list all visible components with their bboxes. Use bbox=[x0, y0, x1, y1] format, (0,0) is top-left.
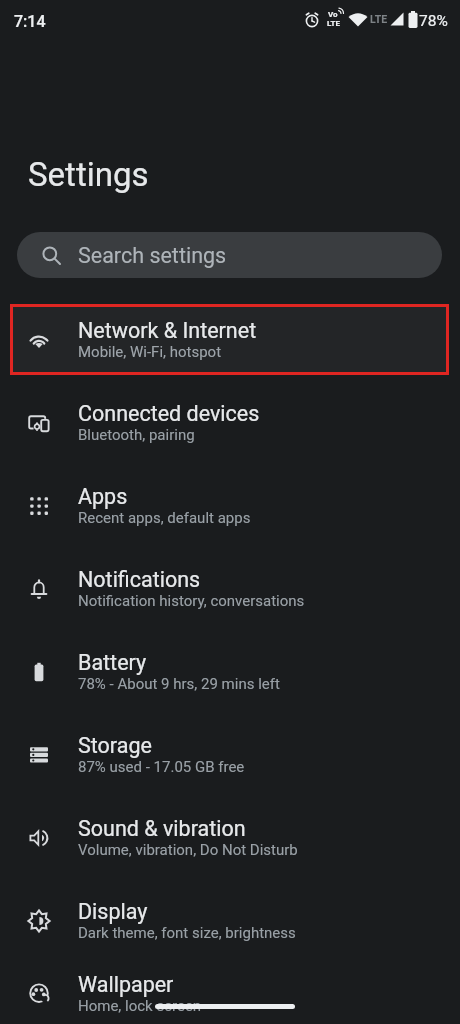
staticText: Settings bbox=[28, 155, 149, 194]
button[interactable]: Apps bbox=[0, 464, 460, 547]
staticText: Volume, vibration, Do Not Disturb bbox=[78, 841, 298, 859]
staticText: Notification history, conversations bbox=[78, 592, 305, 610]
staticText: Search settings bbox=[78, 243, 227, 268]
staticText: Recent apps, default apps bbox=[78, 509, 251, 527]
staticText: Network & Internet bbox=[78, 318, 257, 343]
staticText: Sound & vibration bbox=[78, 816, 246, 841]
button[interactable]: Sound & vibration bbox=[0, 796, 460, 879]
staticText: Dark theme, font size, brightness bbox=[78, 924, 296, 942]
staticText: 78% - About 9 hrs, 29 mins left bbox=[78, 675, 280, 693]
button[interactable]: Search settings bbox=[17, 232, 442, 278]
staticText: LTE bbox=[327, 19, 340, 28]
button[interactable]: Storage bbox=[0, 713, 460, 796]
staticText: Display bbox=[78, 899, 148, 924]
button[interactable]: Wallpaper bbox=[0, 962, 460, 1024]
staticText: 78% bbox=[419, 12, 448, 30]
staticText: Connected devices bbox=[78, 401, 260, 426]
staticText: 7:14 bbox=[14, 12, 46, 31]
staticText: Storage bbox=[78, 733, 152, 758]
staticText: Home, lock screen bbox=[78, 997, 202, 1015]
staticText: Battery bbox=[78, 650, 147, 675]
staticText: Apps bbox=[78, 484, 128, 509]
staticText: Mobile, Wi-Fi, hotspot bbox=[78, 343, 222, 361]
staticText: 87% used - 17.05 GB free bbox=[78, 758, 245, 776]
staticText: Vo bbox=[328, 10, 338, 19]
button[interactable]: Display bbox=[0, 879, 460, 962]
staticText: Bluetooth, pairing bbox=[78, 426, 195, 444]
button[interactable]: Battery bbox=[0, 630, 460, 713]
staticText: Notifications bbox=[78, 567, 201, 592]
staticText: LTE bbox=[370, 13, 388, 25]
button[interactable]: Notifications bbox=[0, 547, 460, 630]
button[interactable]: Network & Internet bbox=[0, 298, 460, 381]
staticText: Wallpaper bbox=[78, 972, 174, 997]
button[interactable]: Connected devices bbox=[0, 381, 460, 464]
